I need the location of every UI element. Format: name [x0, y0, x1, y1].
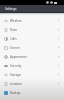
staticText: Storage [10, 73, 57, 77]
button[interactable]: Security [0, 61, 64, 70]
staticText: Wireless [10, 19, 57, 23]
other: Open [57, 64, 60, 67]
staticText: Appearance [10, 55, 57, 59]
other: Open [57, 82, 60, 85]
staticText: Calls [10, 37, 57, 41]
staticText: Backup [10, 91, 57, 95]
other: Open [57, 73, 60, 76]
other: Open [57, 46, 60, 49]
button[interactable]: Storage [0, 70, 64, 79]
button[interactable]: Backup [0, 88, 64, 97]
button[interactable]: Appearance [0, 52, 64, 61]
button[interactable]: Wireless [0, 16, 64, 25]
button[interactable]: Data [0, 25, 64, 34]
other: Open [57, 28, 60, 31]
button[interactable]: Location [0, 79, 64, 88]
staticText: Security [10, 64, 57, 68]
other: Open [57, 55, 60, 58]
other: Open [57, 37, 60, 40]
button[interactable]: Calls [0, 34, 64, 43]
staticText: Settings [5, 7, 17, 11]
staticText: Data [10, 28, 57, 32]
staticText: Location [10, 82, 57, 86]
staticText: Screen [10, 46, 57, 50]
button[interactable]: Screen [0, 43, 64, 52]
other: Open [57, 19, 60, 22]
